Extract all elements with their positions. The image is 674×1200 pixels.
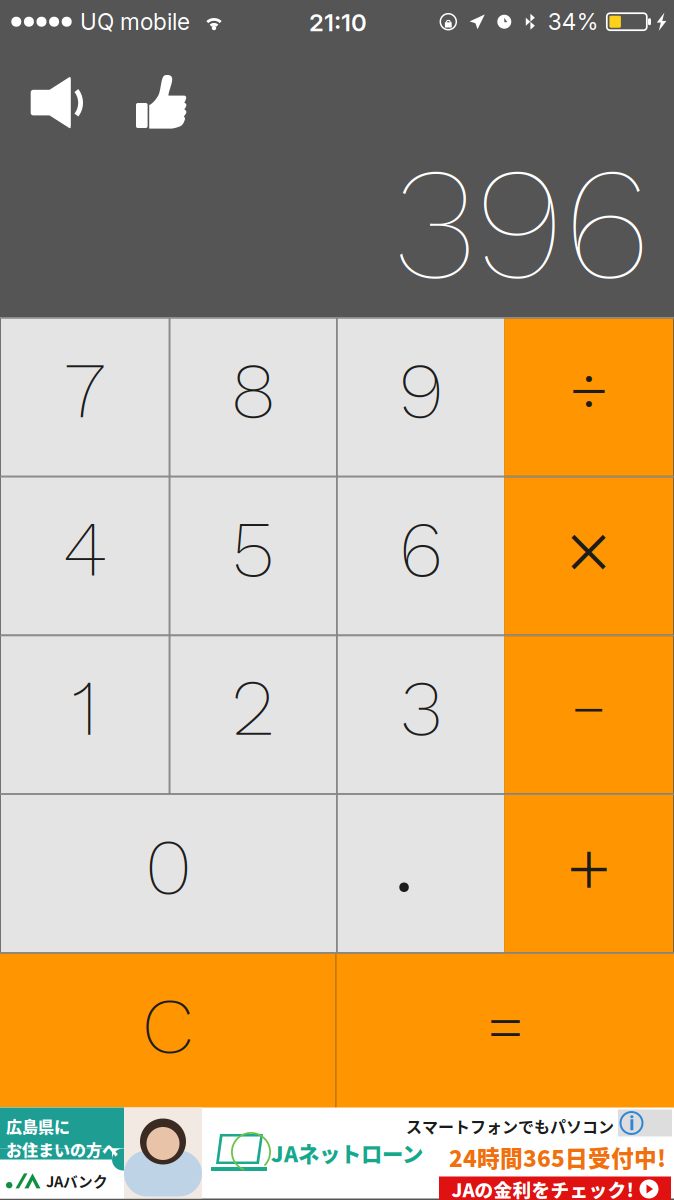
staticText: 5: [232, 503, 275, 595]
button[interactable]: =: [337, 954, 674, 1111]
staticText: UQ mobile: [80, 8, 190, 35]
staticText: 7: [65, 344, 105, 436]
button[interactable]: ÷: [504, 319, 673, 476]
staticText: 9: [398, 344, 443, 436]
button[interactable]: Decimal point: [338, 795, 504, 952]
staticText: スマートフォンでもパソコン: [406, 1114, 614, 1138]
staticText: 0: [145, 820, 192, 913]
staticText: ÷: [569, 350, 609, 428]
button[interactable]: C: [0, 954, 335, 1111]
staticText: =: [486, 990, 524, 1063]
staticText: 396: [394, 130, 650, 315]
staticText: 24時間365日受付中!: [449, 1141, 666, 1173]
button[interactable]: 2: [170, 636, 336, 793]
staticText: 広島県に: [6, 1114, 70, 1138]
staticText: JAバンク: [46, 1170, 108, 1191]
staticText: 8: [231, 344, 276, 436]
staticText: 3: [400, 662, 441, 754]
button[interactable]: 4: [1, 477, 169, 635]
staticText: ×: [563, 500, 615, 600]
staticText: C: [142, 979, 194, 1072]
staticText: 34%: [548, 8, 599, 35]
staticText: i: [629, 1111, 634, 1135]
staticText: 6: [399, 503, 443, 595]
staticText: JAネットローン: [271, 1138, 423, 1168]
button[interactable]: +: [504, 795, 673, 952]
button[interactable]: 6: [338, 477, 504, 635]
staticText: 4: [63, 503, 107, 595]
button[interactable]: 0: [1, 795, 336, 952]
button[interactable]: 7: [1, 319, 169, 476]
button[interactable]: Sound: [30, 74, 84, 132]
button[interactable]: 5: [170, 477, 336, 635]
staticText: 1: [72, 662, 98, 754]
staticText: 21:10: [309, 8, 367, 37]
button[interactable]: ×: [504, 477, 673, 635]
staticText: −: [571, 675, 606, 742]
button[interactable]: −: [504, 636, 673, 793]
staticText: +: [566, 824, 611, 911]
button[interactable]: 3: [338, 636, 504, 793]
button[interactable]: Advertisement: [0, 1111, 674, 1200]
button[interactable]: 9: [338, 319, 504, 476]
button[interactable]: 8: [170, 319, 336, 476]
staticText: お住まいの方へ: [6, 1138, 118, 1161]
button[interactable]: 1: [1, 636, 169, 793]
staticText: 2: [232, 662, 275, 754]
staticText: JAの金利をチェック!: [451, 1175, 633, 1200]
button[interactable]: Rate app: [136, 74, 190, 132]
